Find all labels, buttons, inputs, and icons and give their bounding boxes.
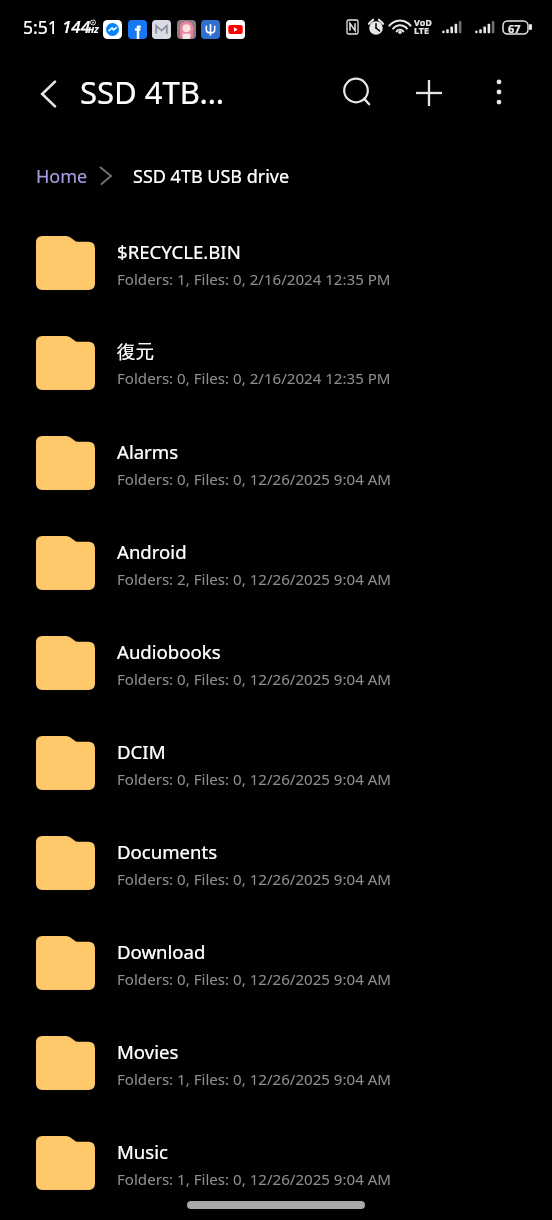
button[interactable]: More options	[471, 64, 527, 120]
staticText: Folders: 0, Files: 0, 12/26/2025 9:04 AM	[117, 869, 392, 890]
staticText: Folders: 1, Files: 0, 12/26/2025 9:04 AM	[117, 1069, 392, 1090]
staticText: Documents	[117, 839, 218, 864]
button[interactable]: Back	[22, 66, 78, 122]
button[interactable]: $RECYCLE.BIN	[0, 213, 552, 313]
button[interactable]: Android	[0, 513, 552, 613]
button[interactable]: Alarms	[0, 413, 552, 513]
button[interactable]: DCIM	[0, 713, 552, 813]
button[interactable]: Documents	[0, 813, 552, 913]
staticText: Movies	[117, 1039, 179, 1064]
button[interactable]: Download	[0, 913, 552, 1013]
staticText: Folders: 2, Files: 0, 12/26/2025 9:04 AM	[117, 569, 392, 590]
staticText: Download	[117, 939, 206, 964]
staticText: HZ	[88, 24, 99, 36]
staticText: Audiobooks	[117, 639, 221, 664]
button[interactable]: 復元	[0, 313, 552, 413]
staticText: Music	[117, 1139, 168, 1164]
button[interactable]: Home	[26, 156, 98, 197]
button[interactable]: Search	[329, 65, 385, 121]
staticText: DCIM	[117, 739, 166, 764]
staticText: LTE	[414, 24, 430, 36]
staticText: Folders: 0, Files: 0, 2/16/2024 12:35 PM	[117, 368, 391, 389]
staticText: Folders: 0, Files: 0, 12/26/2025 9:04 AM	[117, 769, 392, 790]
button[interactable]: Add	[401, 65, 457, 121]
staticText: SSD 4TB…	[80, 71, 225, 113]
staticText: Home	[36, 164, 88, 189]
staticText: Android	[117, 539, 187, 564]
staticText: 144	[62, 15, 91, 38]
staticText: 5:51	[23, 15, 58, 39]
staticText: Alarms	[117, 439, 179, 464]
button[interactable]: Movies	[0, 1013, 552, 1113]
staticText: 67	[508, 21, 521, 36]
staticText: Folders: 0, Files: 0, 12/26/2025 9:04 AM	[117, 969, 392, 990]
button[interactable]: Audiobooks	[0, 613, 552, 713]
button[interactable]: Music	[0, 1113, 552, 1213]
staticText: Folders: 0, Files: 0, 12/26/2025 9:04 AM	[117, 669, 392, 690]
staticText: VoD	[414, 16, 432, 28]
staticText: 復元	[117, 340, 155, 363]
staticText: Folders: 0, Files: 0, 12/26/2025 9:04 AM	[117, 469, 392, 490]
staticText: $RECYCLE.BIN	[117, 239, 241, 264]
staticText: Folders: 1, Files: 0, 12/26/2025 9:04 AM	[117, 1169, 392, 1190]
staticText: SSD 4TB USB drive	[133, 164, 290, 189]
staticText: Folders: 1, Files: 0, 2/16/2024 12:35 PM	[117, 269, 391, 290]
